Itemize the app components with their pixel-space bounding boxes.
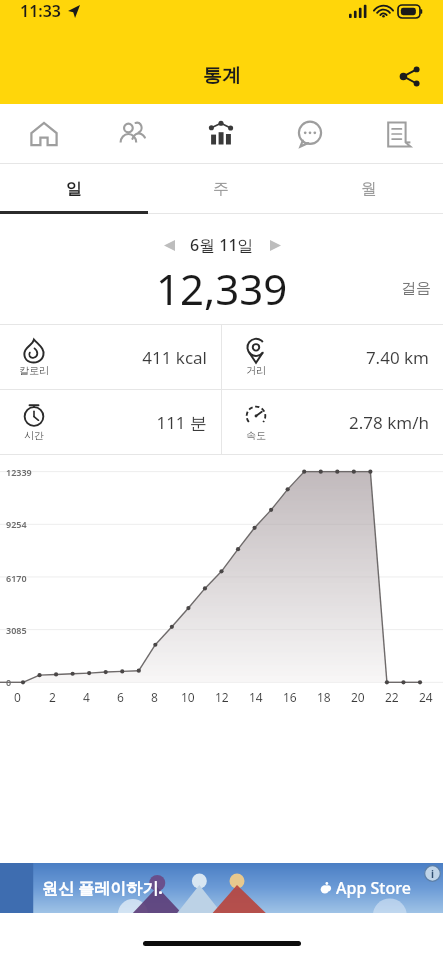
staticText: 시간	[24, 429, 44, 442]
staticText: 24	[419, 689, 433, 705]
staticText: 걸음	[401, 279, 431, 298]
staticText: 6170	[6, 572, 27, 584]
button[interactable]: Statistics	[176, 104, 265, 163]
staticText: App Store	[336, 877, 411, 899]
staticText: 12,339	[156, 260, 288, 316]
staticText: 0	[6, 676, 12, 688]
button[interactable]: 일	[0, 164, 147, 214]
staticText: 0	[14, 689, 21, 705]
button[interactable]: 거리	[222, 325, 443, 389]
staticText: 12	[215, 689, 229, 705]
staticText: 16	[283, 689, 297, 705]
button[interactable]: 시간	[0, 390, 221, 454]
staticText: 10	[181, 689, 195, 705]
staticText: 거리	[246, 364, 266, 377]
staticText: 2	[49, 689, 56, 705]
staticText: 6월 11일	[190, 234, 254, 256]
staticText: 9254	[6, 518, 27, 530]
staticText: 일	[66, 179, 82, 199]
button[interactable]: 칼로리	[0, 325, 221, 389]
button[interactable]: Friends	[88, 104, 176, 163]
button[interactable]: Next day	[260, 230, 290, 260]
staticText: 속도	[246, 429, 266, 442]
button[interactable]: Previous day	[154, 230, 184, 260]
staticText: 6	[117, 689, 124, 705]
staticText: 7.40 km	[276, 346, 429, 369]
button[interactable]: News	[354, 104, 443, 163]
staticText: 20	[351, 689, 365, 705]
button[interactable]: Home	[0, 104, 88, 163]
button[interactable]: 속도	[222, 390, 443, 454]
button[interactable]: Chat	[265, 104, 354, 163]
staticText: i	[431, 867, 434, 881]
staticText: 411 kcal	[54, 346, 207, 369]
button[interactable]: Ad info	[424, 865, 441, 882]
staticText: 12339	[6, 466, 32, 478]
staticText: 칼로리	[19, 364, 49, 377]
staticText: 월	[361, 179, 377, 199]
staticText: 원신 플레이하기.	[42, 877, 163, 899]
button[interactable]: Share	[387, 53, 433, 99]
button[interactable]: 주	[147, 164, 295, 214]
staticText: 11:33	[20, 0, 62, 22]
staticText: 4	[83, 689, 90, 705]
staticText: 14	[249, 689, 263, 705]
staticText: 3085	[6, 624, 27, 636]
staticText: 8	[151, 689, 158, 705]
staticText: 2.78 km/h	[276, 411, 429, 434]
staticText: 통계	[203, 64, 241, 88]
staticText: 18	[317, 689, 331, 705]
staticText: 주	[213, 179, 229, 199]
staticText: 22	[385, 689, 399, 705]
staticText: 111 분	[54, 411, 207, 434]
button[interactable]: 월	[295, 164, 443, 214]
button[interactable]: 원신 플레이하기.	[0, 863, 443, 913]
